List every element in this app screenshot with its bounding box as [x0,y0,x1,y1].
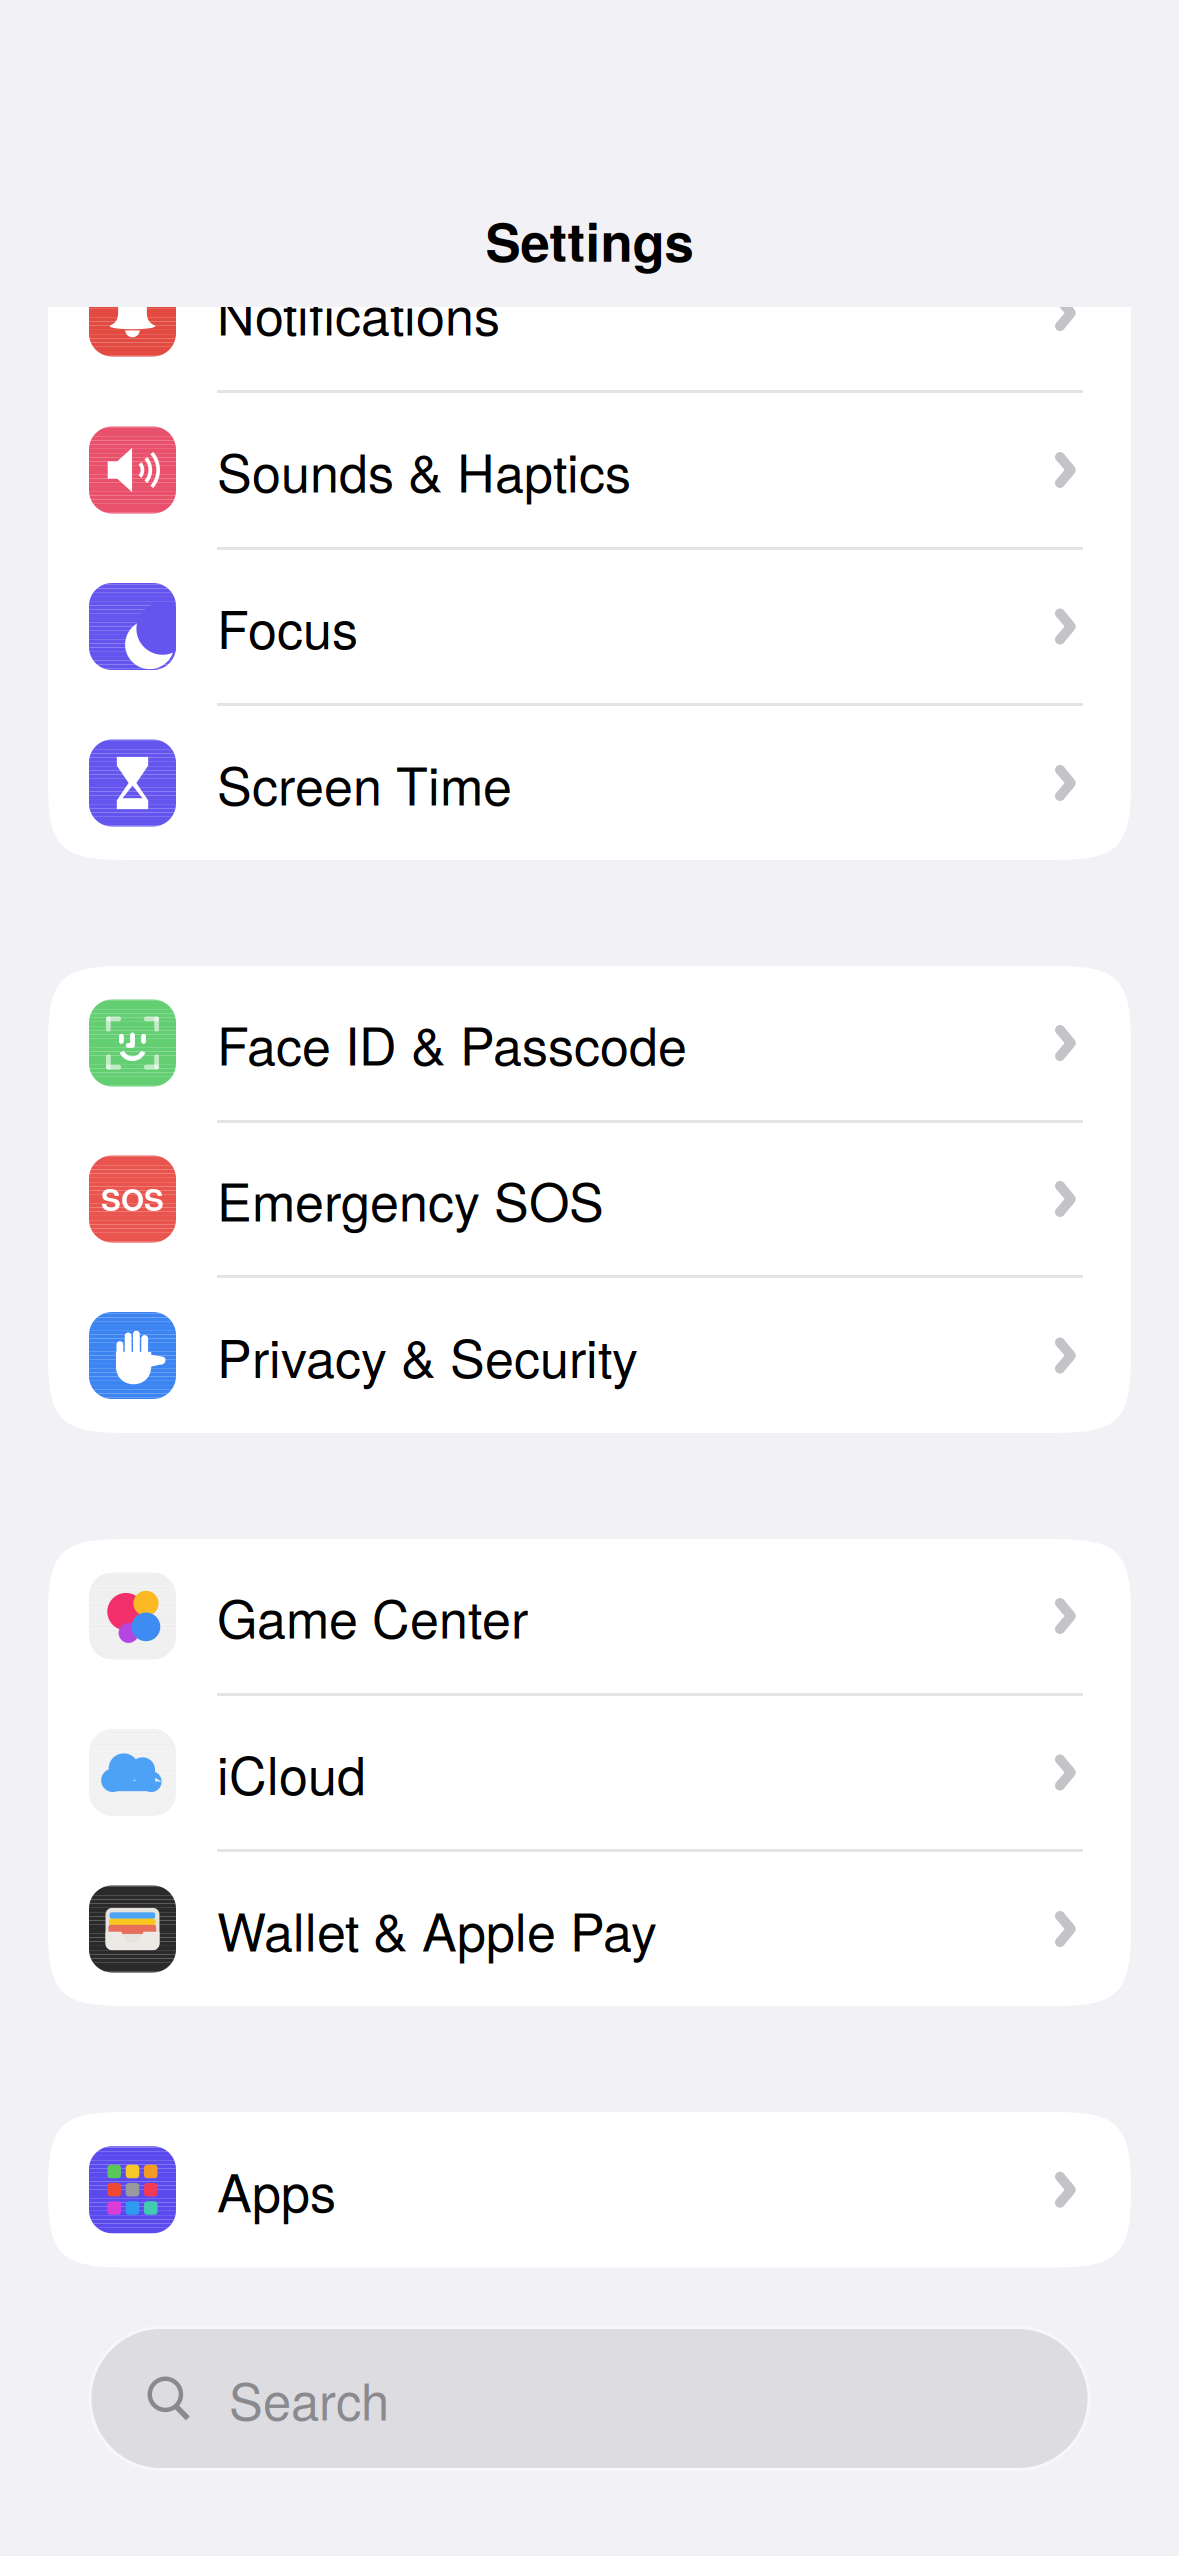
staticText: SOS [101,1178,164,1220]
button[interactable]: SOS [48,1120,1131,1275]
staticText: iCloud [217,1735,366,1810]
staticText: Privacy & Security [217,1318,638,1393]
staticText: Emergency SOS [217,1162,604,1236]
button[interactable]: iCloud [48,1693,1131,1849]
button[interactable]: Notifications [48,236,1131,390]
staticText: Game Center [217,1579,528,1653]
button[interactable]: Focus [48,547,1131,703]
staticText: Focus [217,589,358,664]
staticText: Settings [485,203,693,278]
button[interactable]: Screen Time [48,703,1131,860]
staticText: Wallet & Apple Pay [217,1892,657,1966]
button[interactable]: Wallet & Apple Pay [48,1849,1131,2006]
staticText: Face ID & Passcode [217,1006,687,1080]
staticText: Apps [217,2152,336,2227]
button[interactable]: Search [0,2327,1179,2469]
button[interactable]: Sounds & Haptics [48,390,1131,547]
button[interactable]: Game Center [48,1539,1131,1693]
button[interactable]: Face ID & Passcode [48,966,1131,1120]
staticText: Search [229,2362,389,2435]
staticText: Notifications [217,276,500,350]
staticText: Sounds & Haptics [217,433,631,507]
button[interactable]: Privacy & Security [48,1275,1131,1433]
button[interactable]: Apps [48,2112,1131,2267]
staticText: Screen Time [217,746,512,820]
